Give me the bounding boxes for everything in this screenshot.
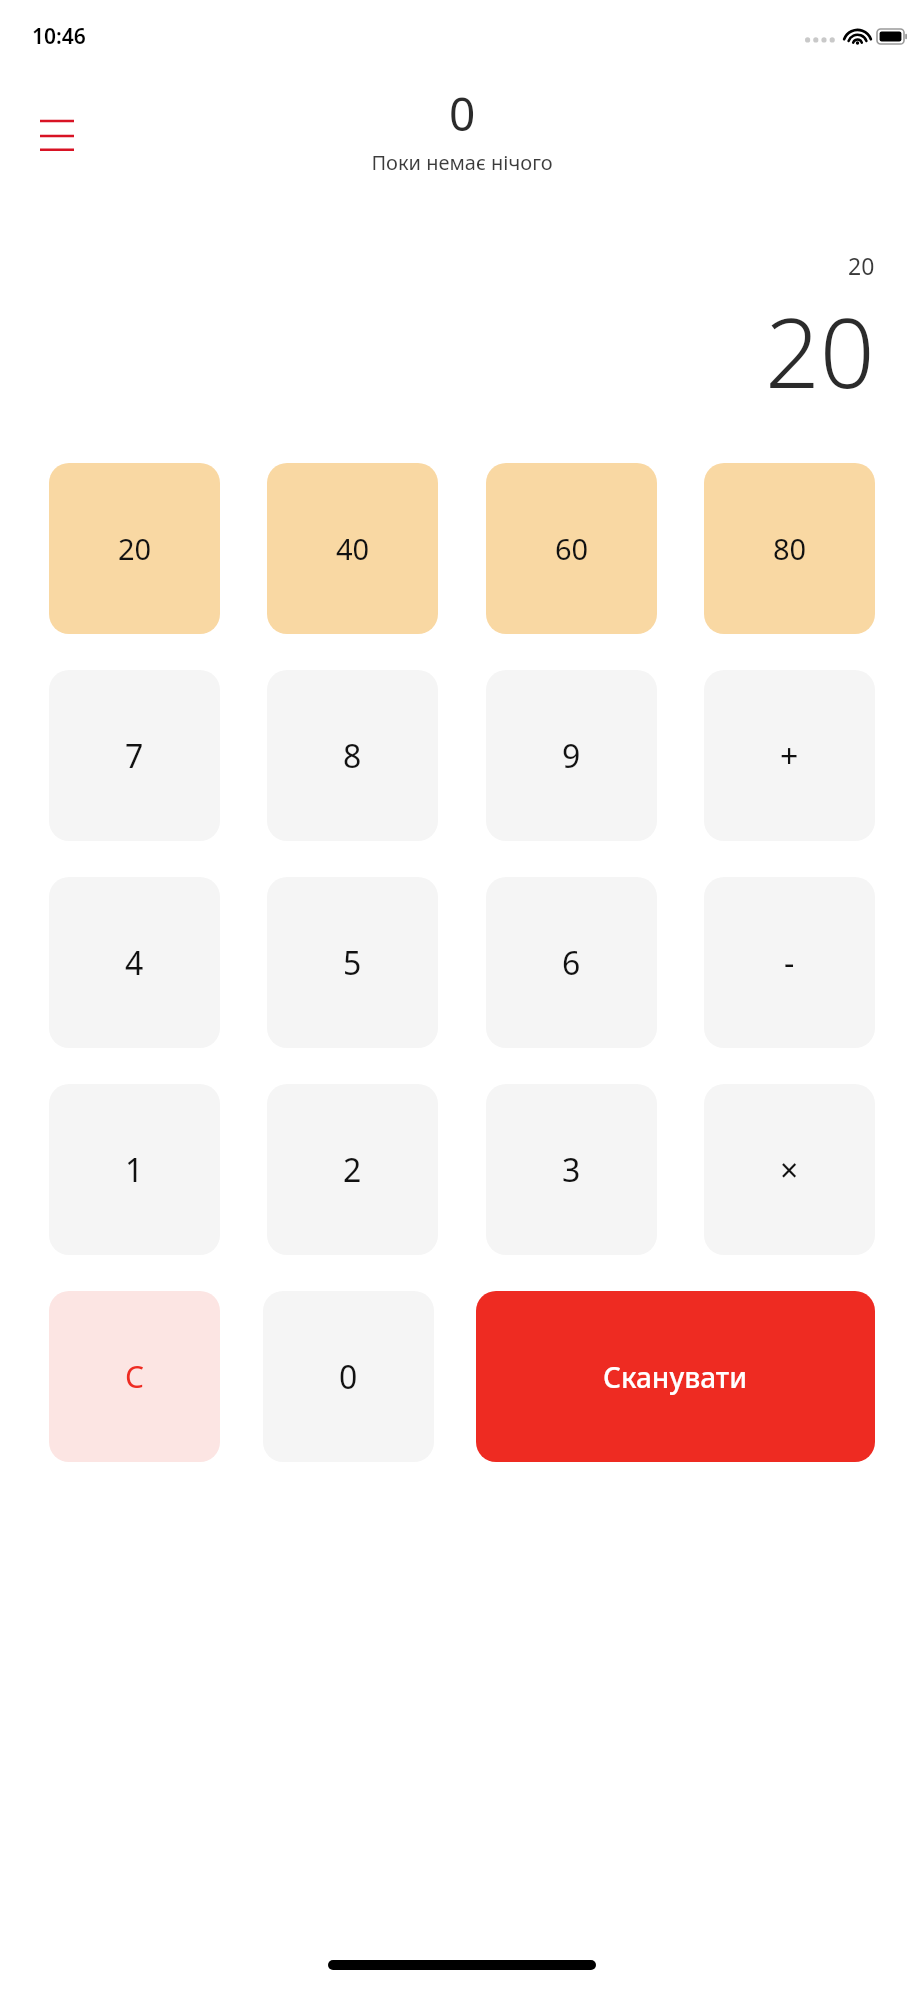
- staticText: 5: [343, 941, 362, 985]
- staticText: 8: [343, 734, 362, 778]
- staticText: 7: [125, 734, 144, 778]
- button[interactable]: 40: [267, 463, 438, 634]
- staticText: Сканувати: [603, 1358, 748, 1396]
- staticText: -: [784, 941, 795, 985]
- staticText: 10:46: [32, 22, 86, 51]
- staticText: C: [125, 1356, 144, 1397]
- staticText: 4: [125, 941, 144, 985]
- button[interactable]: 20: [49, 463, 220, 634]
- staticText: 20: [118, 529, 152, 568]
- button[interactable]: C: [49, 1291, 220, 1462]
- staticText: Поки немає нічого: [371, 149, 553, 176]
- button[interactable]: -: [704, 877, 875, 1048]
- button[interactable]: 5: [267, 877, 438, 1048]
- staticText: 1: [125, 1148, 144, 1192]
- button[interactable]: ×: [704, 1084, 875, 1255]
- staticText: 60: [555, 529, 589, 568]
- staticText: 0: [449, 82, 476, 145]
- staticText: 0: [339, 1355, 358, 1399]
- button[interactable]: 7: [49, 670, 220, 841]
- button[interactable]: Menu: [40, 112, 88, 160]
- button[interactable]: +: [704, 670, 875, 841]
- staticText: +: [780, 734, 799, 778]
- button[interactable]: 1: [49, 1084, 220, 1255]
- staticText: 20: [765, 285, 875, 416]
- button[interactable]: 9: [486, 670, 657, 841]
- button[interactable]: 8: [267, 670, 438, 841]
- button[interactable]: 80: [704, 463, 875, 634]
- staticText: 20: [848, 250, 875, 281]
- button[interactable]: Сканувати: [476, 1291, 875, 1462]
- staticText: 3: [562, 1148, 581, 1192]
- staticText: 40: [336, 529, 370, 568]
- button[interactable]: 0: [263, 1291, 434, 1462]
- button[interactable]: 60: [486, 463, 657, 634]
- staticText: ×: [780, 1148, 799, 1192]
- button[interactable]: 6: [486, 877, 657, 1048]
- staticText: 9: [562, 734, 581, 778]
- button[interactable]: 4: [49, 877, 220, 1048]
- button[interactable]: 3: [486, 1084, 657, 1255]
- staticText: 2: [343, 1148, 362, 1192]
- button[interactable]: 2: [267, 1084, 438, 1255]
- staticText: 80: [773, 529, 807, 568]
- staticText: 6: [562, 941, 581, 985]
